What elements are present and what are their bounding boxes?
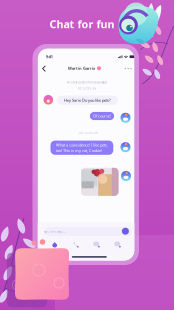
button[interactable]: Voice bbox=[44, 239, 65, 251]
button[interactable]: More options bbox=[121, 64, 135, 74]
button[interactable]: Back bbox=[38, 63, 50, 75]
staticText: 00:12:05:26 bbox=[79, 131, 98, 134]
staticText: Chat for fun bbox=[49, 17, 114, 31]
staticText: Of course! bbox=[93, 113, 111, 119]
staticText: 9:41 bbox=[46, 54, 53, 59]
staticText: Hey Sarie Do you like pets? bbox=[64, 98, 111, 103]
button[interactable]: Martin Garrix bbox=[68, 63, 101, 73]
button[interactable]: Send bbox=[120, 226, 130, 236]
button[interactable]: Call bbox=[65, 239, 86, 251]
staticText: Martin Garrix bbox=[68, 66, 95, 71]
staticText: 00:12:05:26 bbox=[77, 87, 96, 90]
staticText: This chat comes from click match bbox=[66, 81, 107, 84]
staticText: Type a message... bbox=[43, 230, 66, 233]
button[interactable]: Gallery bbox=[107, 239, 128, 251]
button[interactable]: Camera bbox=[86, 239, 107, 251]
staticText: What a coincidence! I like pets, too! Th… bbox=[56, 142, 108, 153]
